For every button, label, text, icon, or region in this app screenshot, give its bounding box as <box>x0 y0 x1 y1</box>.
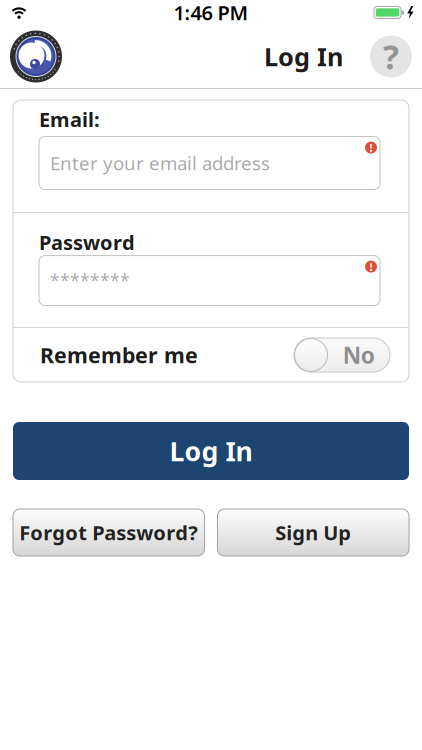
staticText: Log In <box>264 40 343 73</box>
staticText: ******** <box>50 269 130 292</box>
staticText: Enter your email address <box>50 151 270 175</box>
button[interactable]: ******** <box>39 256 380 306</box>
staticText: ? <box>383 34 399 79</box>
staticText: Forgot Password? <box>19 519 198 546</box>
button[interactable]: Remember me <box>294 338 390 372</box>
button[interactable]: Forgot Password? <box>13 509 204 556</box>
staticText: Remember me <box>40 341 198 369</box>
button[interactable]: Enter your email address <box>39 137 380 190</box>
button[interactable]: Sign Up <box>217 509 409 556</box>
staticText: Log In <box>169 433 252 469</box>
staticText: Email: <box>39 106 100 133</box>
staticText: 1:46 PM <box>173 0 248 26</box>
button[interactable]: Help <box>370 35 412 77</box>
staticText: Password <box>39 229 135 256</box>
staticText: Sign Up <box>275 519 351 546</box>
button[interactable]: Log In <box>13 422 409 480</box>
staticText: No <box>343 340 375 370</box>
